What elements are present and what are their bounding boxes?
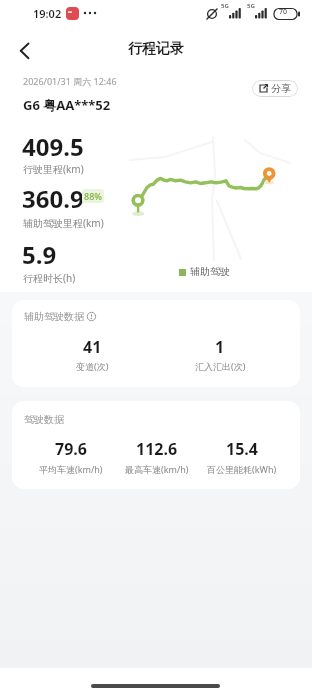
staticText: 行程记录 — [128, 40, 184, 58]
staticText: 平均车速(km/h) — [39, 463, 103, 475]
staticText: 70 — [279, 7, 288, 17]
staticText: 百公里能耗(kWh) — [207, 463, 277, 475]
staticText: 分享 — [271, 82, 291, 95]
button[interactable] — [10, 36, 44, 64]
button[interactable]: 分享 — [252, 80, 298, 97]
staticText: 79.6 — [55, 438, 87, 460]
staticText: 41 — [83, 336, 102, 358]
staticText: 5.9 — [22, 238, 57, 271]
staticText: 辅助驾驶 — [190, 265, 230, 278]
staticText: 112.6 — [136, 438, 178, 460]
staticText: 辅助驾驶里程(km) — [23, 216, 104, 230]
staticText: •• — [68, 9, 72, 16]
staticText: 5G — [221, 2, 229, 10]
staticText: 2026/01/31 周六 12:46 — [23, 75, 117, 87]
staticText: 409.5 — [22, 130, 84, 163]
staticText: 行程时长(h) — [23, 271, 76, 285]
staticText: 88% — [84, 190, 102, 202]
staticText: 汇入汇出(次) — [195, 360, 246, 372]
staticText: 360.9 — [22, 182, 84, 215]
staticText: 1 — [215, 336, 225, 358]
staticText: 19:02 — [33, 6, 62, 21]
staticText: 5G — [247, 2, 255, 10]
staticText: 行驶里程(km) — [23, 162, 84, 176]
staticText: 辅助驾驶数据 — [24, 310, 84, 323]
staticText: 变道(次) — [76, 360, 109, 372]
staticText: 最高车速(km/h) — [125, 463, 189, 475]
staticText: G6 粤AA***52 — [23, 96, 111, 114]
staticText: 15.4 — [226, 438, 258, 460]
staticText: 驾驶数据 — [24, 413, 64, 426]
